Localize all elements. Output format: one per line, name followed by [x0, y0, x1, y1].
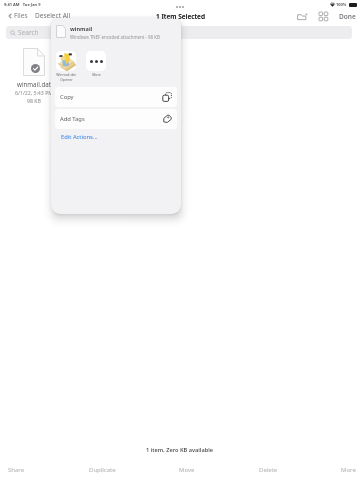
staticText: Opener [60, 77, 73, 82]
button[interactable]: winmail.dat [9, 48, 59, 104]
staticText: 1 item, Zero KB available [146, 446, 214, 454]
staticText: Add Tags [60, 115, 85, 123]
button[interactable]: Search [6, 26, 352, 39]
staticText: Share [8, 466, 25, 474]
staticText: winmail [70, 25, 93, 33]
button[interactable]: Grid View [318, 11, 329, 22]
button[interactable]: Files [6, 9, 29, 22]
button[interactable]: Done [338, 10, 357, 23]
staticText: 1 Item Selected [156, 12, 205, 21]
staticText: Search [18, 28, 39, 37]
button[interactable]: Deselect All [34, 9, 72, 22]
button[interactable]: Add Tags [55, 109, 177, 129]
staticText: Copy [60, 93, 74, 101]
staticText: Edit Actions... [61, 133, 98, 141]
staticText: Deselect All [35, 11, 71, 20]
button[interactable]: More [340, 464, 357, 476]
staticText: More [92, 72, 101, 77]
staticText: Duplicate [89, 466, 116, 474]
staticText: Move [179, 466, 195, 474]
button[interactable]: Copy [55, 87, 177, 107]
button[interactable]: Move [178, 464, 196, 476]
button[interactable]: Share [7, 464, 26, 476]
staticText: Winmail.dat [56, 72, 76, 77]
staticText: 1 Item Selected [156, 12, 205, 21]
staticText: Delete [259, 466, 278, 474]
staticText: Done [339, 12, 356, 21]
staticText: Files [14, 11, 28, 20]
staticText: 9:41 AM Tue Jan 9 [4, 2, 41, 7]
button[interactable]: New Folder [296, 11, 309, 22]
button[interactable]: Winmail.dat [54, 51, 78, 82]
staticText: 100% [336, 2, 347, 7]
button[interactable]: Edit Actions... [59, 131, 100, 143]
staticText: 6/1/22, 5:43 PM [15, 89, 53, 96]
button[interactable]: Delete [258, 464, 279, 476]
staticText: More [341, 466, 356, 474]
button[interactable]: More [84, 51, 108, 77]
staticText: 98 KB [27, 97, 41, 104]
staticText: winmail.dat [17, 80, 51, 88]
button[interactable]: Duplicate [88, 464, 117, 476]
staticText: Windows TNEF encoded attachment - 98 KB [70, 34, 160, 40]
